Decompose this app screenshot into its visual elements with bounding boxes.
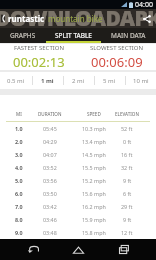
button[interactable]: 6.0 (0, 187, 156, 200)
button[interactable]: 5 mi (94, 72, 125, 89)
button[interactable]: 1 mi (32, 72, 63, 89)
staticText: DOWNLOADAPK (0, 9, 156, 28)
staticText: 15.9 mph (82, 216, 106, 223)
staticText: runtastic (8, 13, 45, 24)
staticText: 03:50 (43, 190, 57, 197)
staticText: 0 ft (123, 138, 132, 145)
staticText: 04:07 (43, 151, 57, 158)
button[interactable]: 1.0 (0, 122, 156, 135)
staticText: ELEVATION (115, 111, 139, 117)
staticText: SPEED (87, 111, 101, 117)
staticText: 03:48 (43, 229, 57, 236)
staticText: 16 ft (121, 151, 133, 158)
staticText: 00:06:09 (91, 53, 143, 70)
button[interactable]: 8.0 (0, 213, 156, 226)
staticText: FASTEST SECTION (14, 44, 65, 52)
staticText: 9.0 (15, 229, 23, 236)
button[interactable]: 9.0 (0, 226, 156, 239)
staticText: 7.0 (15, 203, 23, 210)
staticText: MAIN DATA (111, 31, 146, 40)
button[interactable]: Back (20, 239, 46, 260)
staticText: 03:42 (43, 203, 57, 210)
staticText: 2 mi (72, 77, 85, 85)
button[interactable]: 10 mi (125, 72, 156, 89)
staticText: 5 mi (103, 77, 116, 85)
button[interactable]: 7.0 (0, 200, 156, 213)
staticText: 0.5 mi (7, 77, 25, 85)
staticText: 16.2 mph (82, 203, 106, 210)
staticText: 29 ft (121, 203, 133, 210)
button[interactable]: Recents (111, 239, 137, 260)
staticText: 13.4 mph (82, 138, 106, 145)
staticText: 03:46 (43, 216, 57, 223)
staticText: 12 ft (121, 229, 133, 236)
staticText: 15.2 mph (82, 177, 106, 184)
staticText: 00:02:13 (13, 53, 65, 70)
staticText: 04:29 (43, 138, 57, 145)
button[interactable]: 0.5 mi (0, 72, 32, 89)
staticText: 52 ft (121, 125, 133, 132)
staticText: 1.0 (15, 125, 23, 132)
staticText: 9 ft (123, 177, 132, 184)
staticText: 2.0 (15, 138, 23, 145)
staticText: 1 mi (41, 77, 54, 85)
staticText: GRAPHS (10, 31, 36, 40)
staticText: 10 mi (133, 77, 149, 85)
staticText: 9 ft (123, 216, 132, 223)
staticText: 10.3 mph (82, 125, 106, 132)
button[interactable]: MAIN DATA (101, 28, 156, 43)
button[interactable]: 5.0 (0, 174, 156, 187)
button[interactable]: GRAPHS (0, 28, 46, 43)
staticText: 8.0 (15, 216, 23, 223)
staticText: 03:56 (43, 177, 57, 184)
staticText: 05:45 (43, 125, 57, 132)
staticText: mountain bike (48, 13, 103, 24)
staticText: 6.0 (15, 190, 23, 197)
button[interactable]: 2.0 (0, 135, 156, 148)
staticText: 3.0 (15, 151, 23, 158)
staticText: 32 ft (121, 164, 133, 171)
button[interactable]: 3.0 (0, 148, 156, 161)
button[interactable]: 4.0 (0, 161, 156, 174)
button[interactable]: 2 mi (63, 72, 94, 89)
staticText: MI (16, 111, 22, 117)
staticText: 15.5 mph (82, 164, 106, 171)
staticText: 15.6 mph (82, 190, 106, 197)
staticText: SPLIT TABLE (55, 31, 92, 40)
staticText: 5.0 (15, 177, 23, 184)
button[interactable]: Home (65, 239, 91, 260)
staticText: SLOWEST SECTION (90, 44, 144, 52)
staticText: 04:00 (135, 0, 153, 9)
staticText: 4.0 (15, 164, 23, 171)
button[interactable]: Share (140, 12, 154, 26)
staticText: 14.5 mph (82, 151, 106, 158)
button[interactable]: SPLIT TABLE (46, 28, 101, 43)
staticText: 6 ft (123, 190, 132, 197)
staticText: 03:52 (43, 164, 57, 171)
staticText: DURATION (38, 111, 62, 117)
staticText: 15.8 mph (82, 229, 106, 236)
